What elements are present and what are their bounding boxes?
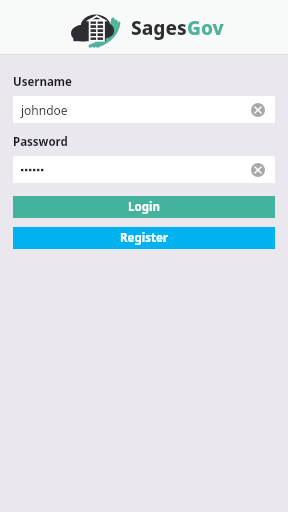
staticText: Sages	[131, 15, 187, 41]
button[interactable]: Clear text	[248, 100, 268, 120]
staticText: Register	[120, 230, 168, 246]
button[interactable]: Clear text	[13, 156, 275, 183]
button[interactable]: Clear text	[248, 160, 268, 180]
staticText: Gov	[187, 15, 224, 41]
staticText: Login	[128, 199, 160, 215]
staticText: Username	[13, 74, 72, 90]
staticText: johndoe	[21, 102, 68, 118]
button[interactable]: Register	[13, 227, 275, 249]
button[interactable]: Login	[13, 196, 275, 218]
button[interactable]: johndoe	[13, 96, 275, 123]
staticText: Password	[13, 134, 68, 150]
